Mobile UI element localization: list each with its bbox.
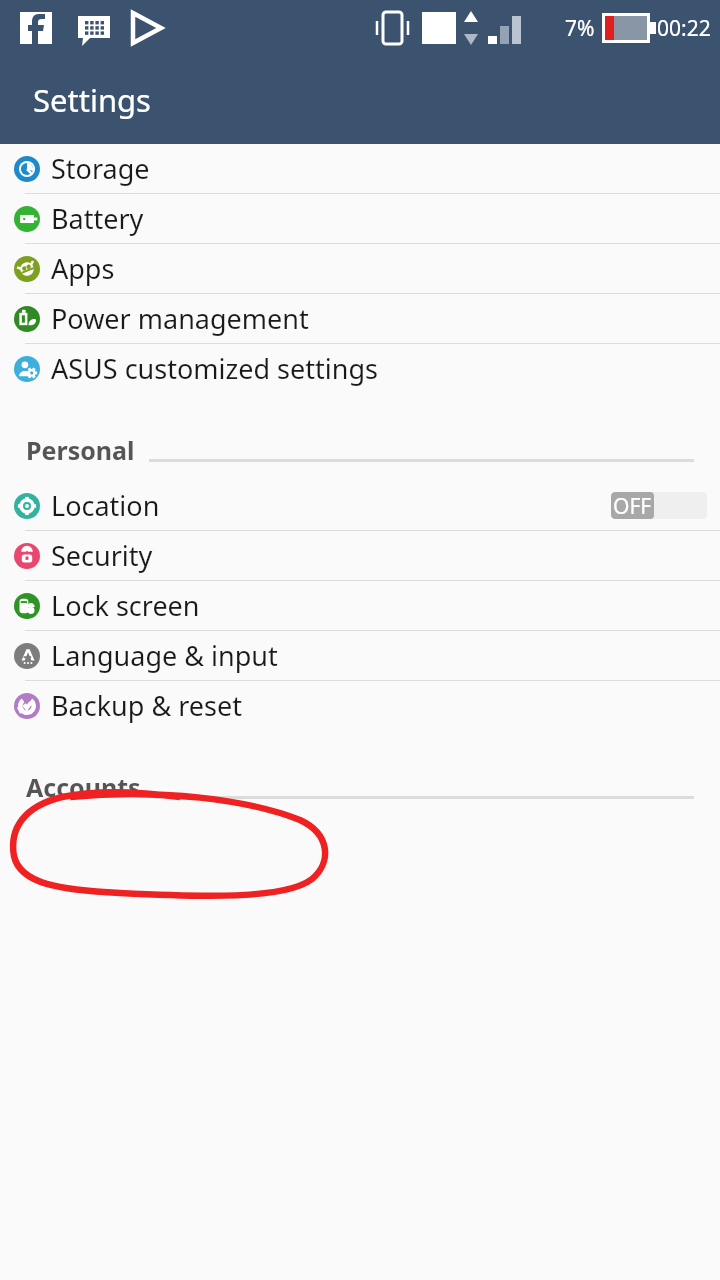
staticText: Storage [51, 150, 150, 187]
button[interactable]: Apps [0, 244, 720, 293]
button[interactable]: Backup & reset [0, 681, 720, 730]
staticText: OFF [613, 492, 652, 519]
staticText: ASUS customized settings [51, 350, 378, 387]
staticText: Apps [51, 250, 115, 287]
button[interactable]: Storage [0, 144, 720, 193]
staticText: Power management [51, 300, 309, 337]
button[interactable]: Battery [0, 194, 720, 243]
staticText: Accounts [26, 770, 141, 804]
staticText: Personal [26, 433, 135, 467]
staticText: Settings [33, 79, 151, 121]
button[interactable]: Language & input [0, 631, 720, 680]
staticText: Language & input [51, 637, 278, 674]
button[interactable]: Power management [0, 294, 720, 343]
button[interactable]: Security [0, 531, 720, 580]
staticText: Battery [51, 200, 144, 237]
button[interactable]: OFF [611, 492, 707, 519]
staticText: Lock screen [51, 587, 200, 624]
staticText: Location [51, 487, 160, 524]
staticText: 00:22 [657, 14, 711, 43]
staticText: Security [51, 537, 153, 574]
button[interactable]: Lock screen [0, 581, 720, 630]
staticText: 7% [565, 14, 595, 43]
staticText: Backup & reset [51, 687, 242, 724]
button[interactable]: ASUS customized settings [0, 344, 720, 393]
button[interactable]: Location [0, 481, 720, 530]
